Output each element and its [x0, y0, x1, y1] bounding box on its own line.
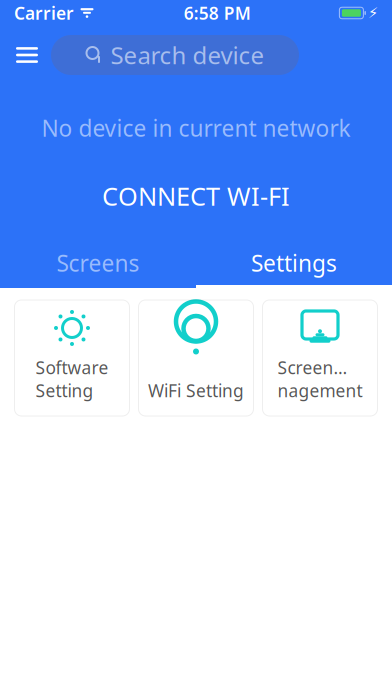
button[interactable]: Search device — [51, 35, 299, 75]
button[interactable]: Menu — [3, 33, 51, 77]
staticText: No device in current network — [41, 113, 350, 143]
staticText: Screens — [56, 248, 139, 278]
staticText: 6:58 PM — [184, 1, 251, 24]
staticText: ⚡︎ — [368, 5, 378, 21]
button[interactable]: Settings — [196, 241, 392, 285]
button[interactable]: Screens — [0, 241, 196, 285]
button[interactable]: CONNECT WI-FI — [82, 171, 310, 221]
staticText: Software Setting — [35, 356, 108, 402]
staticText: WiFi Setting — [148, 379, 244, 402]
button[interactable]: WiFi Setting — [138, 300, 253, 416]
button[interactable]: Software Setting — [14, 300, 129, 416]
staticText: CONNECT WI-FI — [102, 179, 290, 213]
staticText: Settings — [251, 248, 337, 278]
staticText: Carrier — [14, 1, 74, 24]
staticText: Search device — [110, 39, 264, 71]
button[interactable]: Screen…nagement — [262, 300, 377, 416]
staticText: Screen…nagement — [277, 356, 362, 402]
